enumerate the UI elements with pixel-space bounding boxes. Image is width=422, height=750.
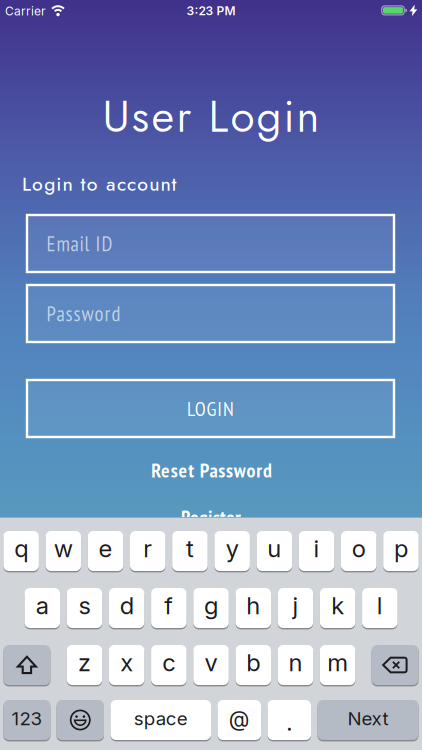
- button[interactable]: Emoji: [56, 699, 104, 741]
- staticText: 123: [11, 707, 42, 729]
- button[interactable]: space: [110, 699, 211, 741]
- staticText: u: [267, 534, 281, 563]
- button[interactable]: v: [193, 644, 229, 686]
- staticText: .: [286, 709, 292, 736]
- staticText: Register: [181, 504, 241, 530]
- staticText: User Login: [102, 85, 319, 148]
- button[interactable]: f: [151, 587, 187, 629]
- staticText: Carrier: [5, 4, 46, 18]
- button[interactable]: Next: [317, 699, 418, 741]
- button[interactable]: b: [235, 644, 271, 686]
- button[interactable]: LOGIN: [27, 380, 394, 437]
- button[interactable]: k: [320, 587, 355, 629]
- staticText: t: [186, 534, 194, 563]
- staticText: f: [164, 591, 173, 620]
- button[interactable]: y: [214, 530, 250, 572]
- staticText: 3:23 PM: [186, 4, 235, 18]
- staticText: x: [120, 648, 133, 677]
- staticText: Reset Password: [151, 457, 272, 483]
- staticText: k: [331, 591, 344, 620]
- button[interactable]: @: [217, 699, 261, 741]
- button[interactable]: n: [278, 644, 313, 686]
- staticText: o: [352, 534, 366, 563]
- staticText: w: [54, 534, 73, 563]
- staticText: a: [36, 591, 49, 620]
- button[interactable]: l: [362, 587, 398, 629]
- staticText: d: [120, 591, 134, 620]
- button[interactable]: z: [67, 644, 102, 686]
- staticText: Password: [46, 300, 120, 327]
- button[interactable]: t: [172, 530, 208, 572]
- button[interactable]: .: [267, 699, 311, 741]
- staticText: r: [143, 534, 152, 563]
- button[interactable]: j: [278, 587, 313, 629]
- staticText: n: [288, 648, 302, 677]
- button[interactable]: 123: [3, 699, 50, 741]
- staticText: v: [205, 648, 218, 677]
- staticText: space: [134, 707, 188, 729]
- staticText: l: [377, 591, 383, 620]
- staticText: m: [327, 648, 348, 677]
- staticText: g: [204, 591, 218, 620]
- button[interactable]: Shift: [3, 644, 50, 686]
- button[interactable]: q: [3, 530, 39, 572]
- button[interactable]: c: [151, 644, 187, 686]
- staticText: c: [162, 648, 175, 677]
- button[interactable]: u: [257, 530, 292, 572]
- staticText: i: [314, 534, 320, 563]
- button[interactable]: Delete: [372, 644, 419, 686]
- button[interactable]: e: [88, 530, 123, 572]
- button[interactable]: Register: [181, 504, 241, 530]
- button[interactable]: a: [24, 587, 60, 629]
- staticText: s: [78, 591, 90, 620]
- staticText: j: [292, 591, 298, 620]
- button[interactable]: s: [67, 587, 102, 629]
- staticText: y: [226, 534, 239, 563]
- button[interactable]: r: [130, 530, 165, 572]
- button[interactable]: Email ID: [27, 215, 394, 272]
- button[interactable]: m: [320, 644, 355, 686]
- staticText: Email ID: [46, 230, 112, 257]
- button[interactable]: g: [193, 587, 229, 629]
- button[interactable]: o: [341, 530, 376, 572]
- staticText: h: [246, 591, 260, 620]
- staticText: LOGIN: [187, 396, 234, 421]
- staticText: e: [99, 534, 113, 563]
- button[interactable]: Password: [27, 285, 394, 342]
- button[interactable]: h: [235, 587, 271, 629]
- staticText: Login to account: [22, 170, 176, 198]
- staticText: @: [229, 706, 250, 732]
- button[interactable]: Reset Password: [151, 457, 272, 483]
- button[interactable]: w: [46, 530, 81, 572]
- button[interactable]: p: [383, 530, 419, 572]
- staticText: b: [246, 648, 260, 677]
- staticText: z: [78, 648, 91, 677]
- button[interactable]: d: [109, 587, 144, 629]
- button[interactable]: i: [299, 530, 334, 572]
- button[interactable]: x: [109, 644, 144, 686]
- staticText: q: [14, 534, 28, 563]
- staticText: p: [394, 534, 408, 563]
- staticText: Next: [347, 707, 388, 729]
